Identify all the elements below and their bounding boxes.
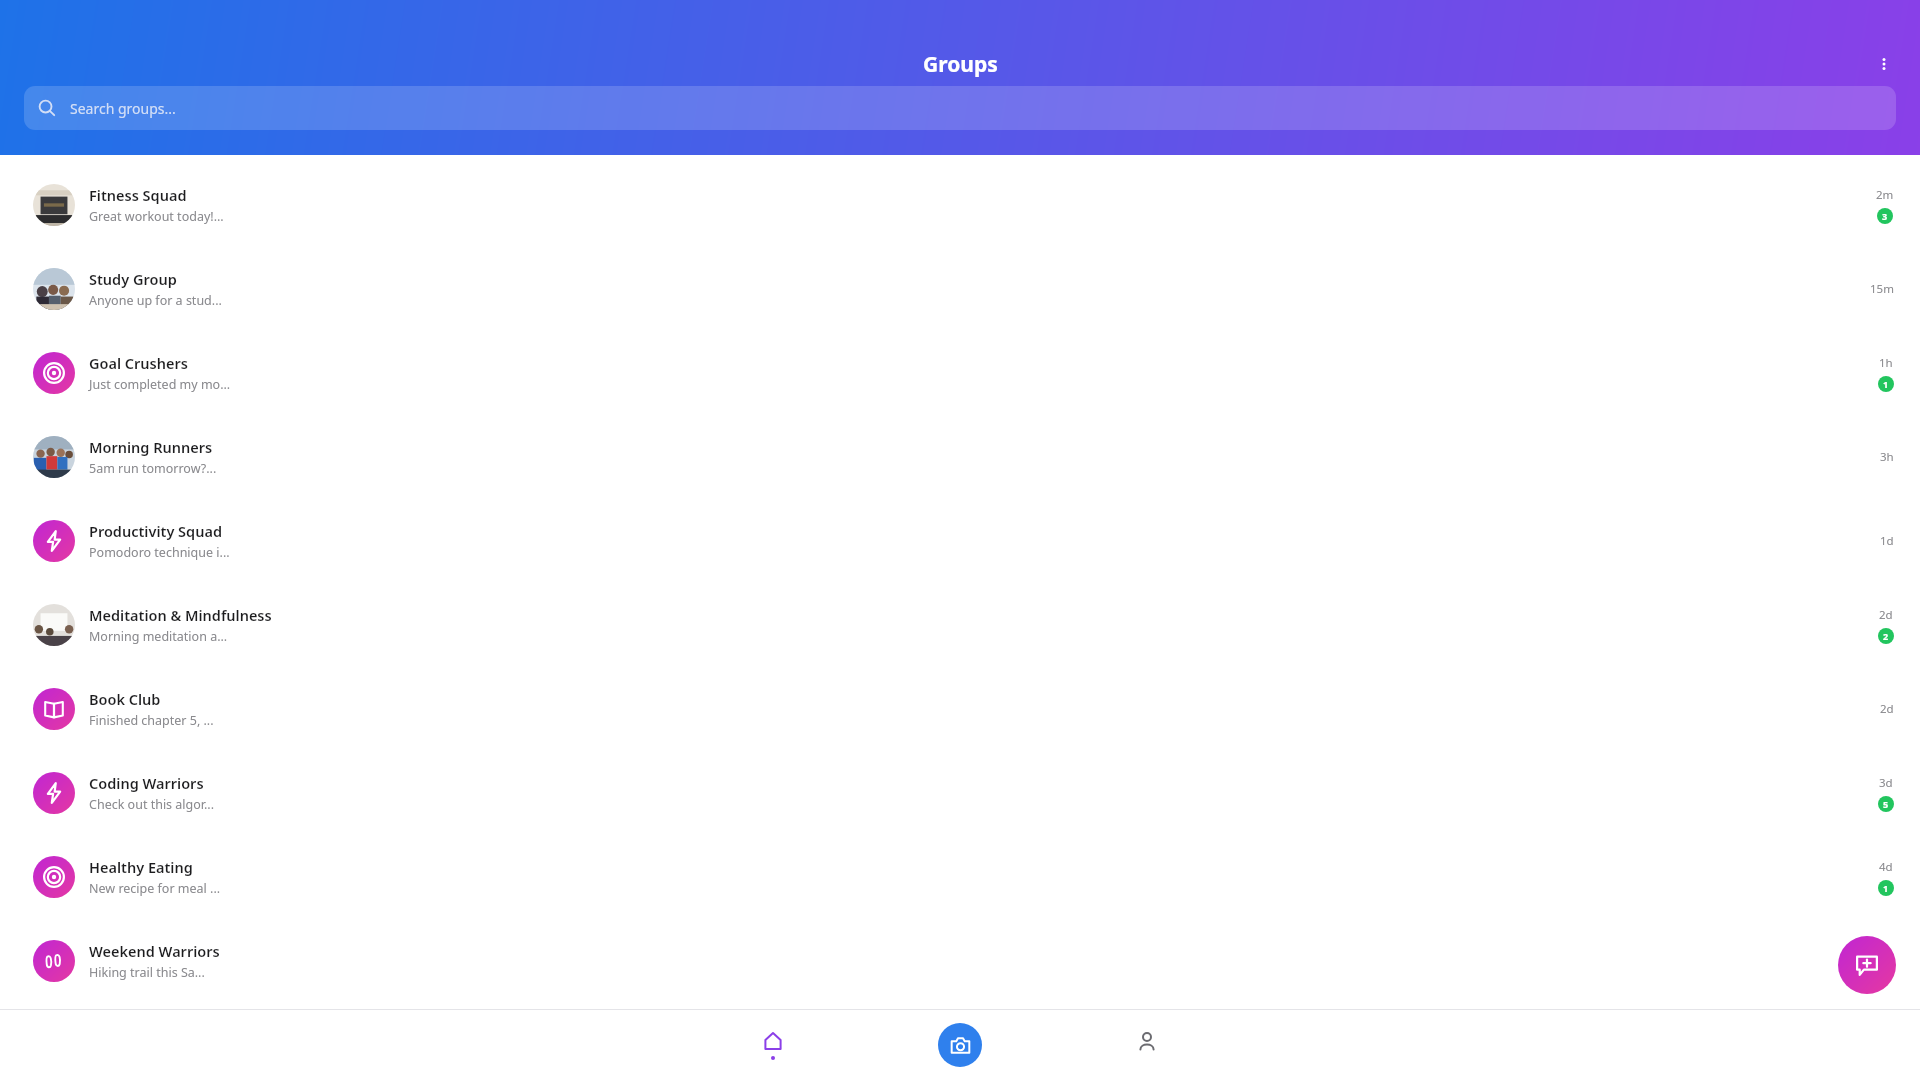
- staticText: Search groups...: [70, 99, 176, 118]
- staticText: Groups: [923, 50, 998, 79]
- button[interactable]: Profile: [1115, 1017, 1179, 1073]
- staticText: Healthy Eating: [89, 857, 193, 877]
- staticText: 4d: [1879, 859, 1893, 875]
- button[interactable]: Fitness Squad: [0, 163, 1920, 247]
- staticText: 5d: [1880, 953, 1894, 969]
- staticText: 1d: [1880, 533, 1894, 549]
- staticText: 15m: [1870, 281, 1894, 297]
- staticText: Coding Warriors: [89, 773, 204, 793]
- staticText: 3h: [1880, 449, 1894, 465]
- button[interactable]: Book Club: [0, 667, 1920, 751]
- staticText: 3: [1882, 210, 1888, 222]
- button[interactable]: New message: [1838, 936, 1896, 994]
- button[interactable]: Goal Crushers: [0, 331, 1920, 415]
- button[interactable]: Camera: [938, 1023, 982, 1067]
- staticText: 2d: [1880, 701, 1894, 717]
- button[interactable]: Meditation & Mindfulness: [0, 583, 1920, 667]
- staticText: Finished chapter 5, ...: [89, 712, 214, 729]
- staticText: Just completed my mo...: [89, 376, 231, 393]
- staticText: 1h: [1879, 355, 1893, 371]
- staticText: Hiking trail this Sa...: [89, 964, 205, 981]
- button[interactable]: More options: [1860, 40, 1908, 88]
- button[interactable]: Home: [741, 1017, 805, 1073]
- staticText: 2d: [1879, 607, 1893, 623]
- staticText: Great workout today!...: [89, 208, 224, 225]
- staticText: 1: [1883, 378, 1889, 390]
- staticText: Check out this algor...: [89, 796, 215, 813]
- staticText: New recipe for meal ...: [89, 880, 221, 897]
- staticText: Weekend Warriors: [89, 941, 220, 961]
- staticText: 5: [1883, 798, 1889, 810]
- staticText: Fitness Squad: [89, 185, 187, 205]
- button[interactable]: Morning Runners: [0, 415, 1920, 499]
- staticText: 3d: [1879, 775, 1893, 791]
- staticText: Anyone up for a stud...: [89, 292, 222, 309]
- staticText: 5am run tomorrow?...: [89, 460, 217, 477]
- button[interactable]: Coding Warriors: [0, 751, 1920, 835]
- staticText: 1: [1883, 882, 1889, 894]
- staticText: 2: [1883, 630, 1889, 642]
- staticText: Study Group: [89, 269, 177, 289]
- staticText: Goal Crushers: [89, 353, 188, 373]
- staticText: Productivity Squad: [89, 521, 222, 541]
- button[interactable]: Productivity Squad: [0, 499, 1920, 583]
- staticText: Pomodoro technique i...: [89, 544, 230, 561]
- button[interactable]: Search groups...: [24, 86, 1896, 130]
- staticText: Morning Runners: [89, 437, 213, 457]
- staticText: Meditation & Mindfulness: [89, 605, 272, 625]
- button[interactable]: Healthy Eating: [0, 835, 1920, 919]
- staticText: 2m: [1876, 187, 1894, 203]
- button[interactable]: Study Group: [0, 247, 1920, 331]
- staticText: Book Club: [89, 689, 161, 709]
- button[interactable]: Weekend Warriors: [0, 919, 1920, 1003]
- staticText: Morning meditation a...: [89, 628, 228, 645]
